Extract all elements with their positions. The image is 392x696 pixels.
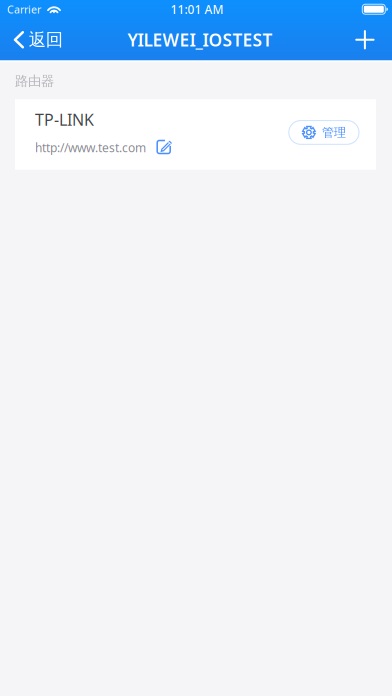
button[interactable]: 返回 bbox=[0, 19, 75, 61]
staticText: 返回 bbox=[29, 29, 63, 50]
button[interactable]: 管理 bbox=[289, 122, 359, 146]
button[interactable]: Add bbox=[341, 19, 392, 61]
staticText: 管理 bbox=[322, 125, 346, 140]
staticText: YILEWEI_IOSTEST bbox=[127, 28, 272, 51]
staticText: http://www.test.com bbox=[35, 140, 146, 155]
staticText: 路由器 bbox=[15, 73, 54, 89]
staticText: 11:01 AM bbox=[170, 1, 223, 17]
staticText: TP-LINK bbox=[35, 109, 94, 130]
staticText: Carrier bbox=[7, 2, 41, 16]
button[interactable]: Edit address bbox=[156, 139, 174, 156]
